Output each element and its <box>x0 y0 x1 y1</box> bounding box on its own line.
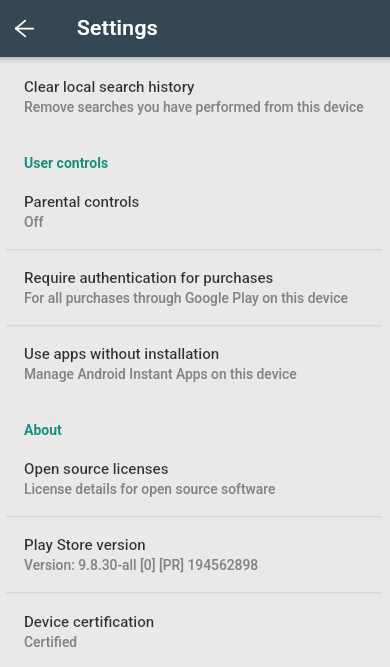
staticText: For all purchases through Google Play on… <box>24 290 348 306</box>
staticText: License details for open source software <box>24 481 276 497</box>
button[interactable]: Require authentication for purchases <box>0 251 390 306</box>
button[interactable]: Device certification <box>0 594 390 650</box>
button[interactable]: Navigate up <box>4 9 44 49</box>
button[interactable]: Clear local search history <box>0 57 390 115</box>
staticText: Use apps without installation <box>24 345 220 363</box>
staticText: User controls <box>24 155 109 171</box>
button[interactable]: Open source licenses <box>0 438 390 497</box>
staticText: Manage Android Instant Apps on this devi… <box>24 366 297 382</box>
staticText: Device certification <box>24 613 155 631</box>
button[interactable]: Play Store version <box>0 518 390 573</box>
staticText: Certified <box>24 634 78 650</box>
staticText: Version: 9.8.30-all [0] [PR] 194562898 <box>24 557 259 573</box>
staticText: Clear local search history <box>24 78 195 96</box>
staticText: Remove searches you have performed from … <box>24 99 364 115</box>
staticText: About <box>24 422 62 438</box>
button[interactable]: Parental controls <box>0 171 390 230</box>
staticText: Play Store version <box>24 536 146 554</box>
staticText: Parental controls <box>24 193 140 211</box>
button[interactable]: Use apps without installation <box>0 327 390 382</box>
staticText: Require authentication for purchases <box>24 269 274 287</box>
staticText: Settings <box>77 16 158 41</box>
staticText: Off <box>24 214 44 230</box>
staticText: Open source licenses <box>24 460 169 478</box>
